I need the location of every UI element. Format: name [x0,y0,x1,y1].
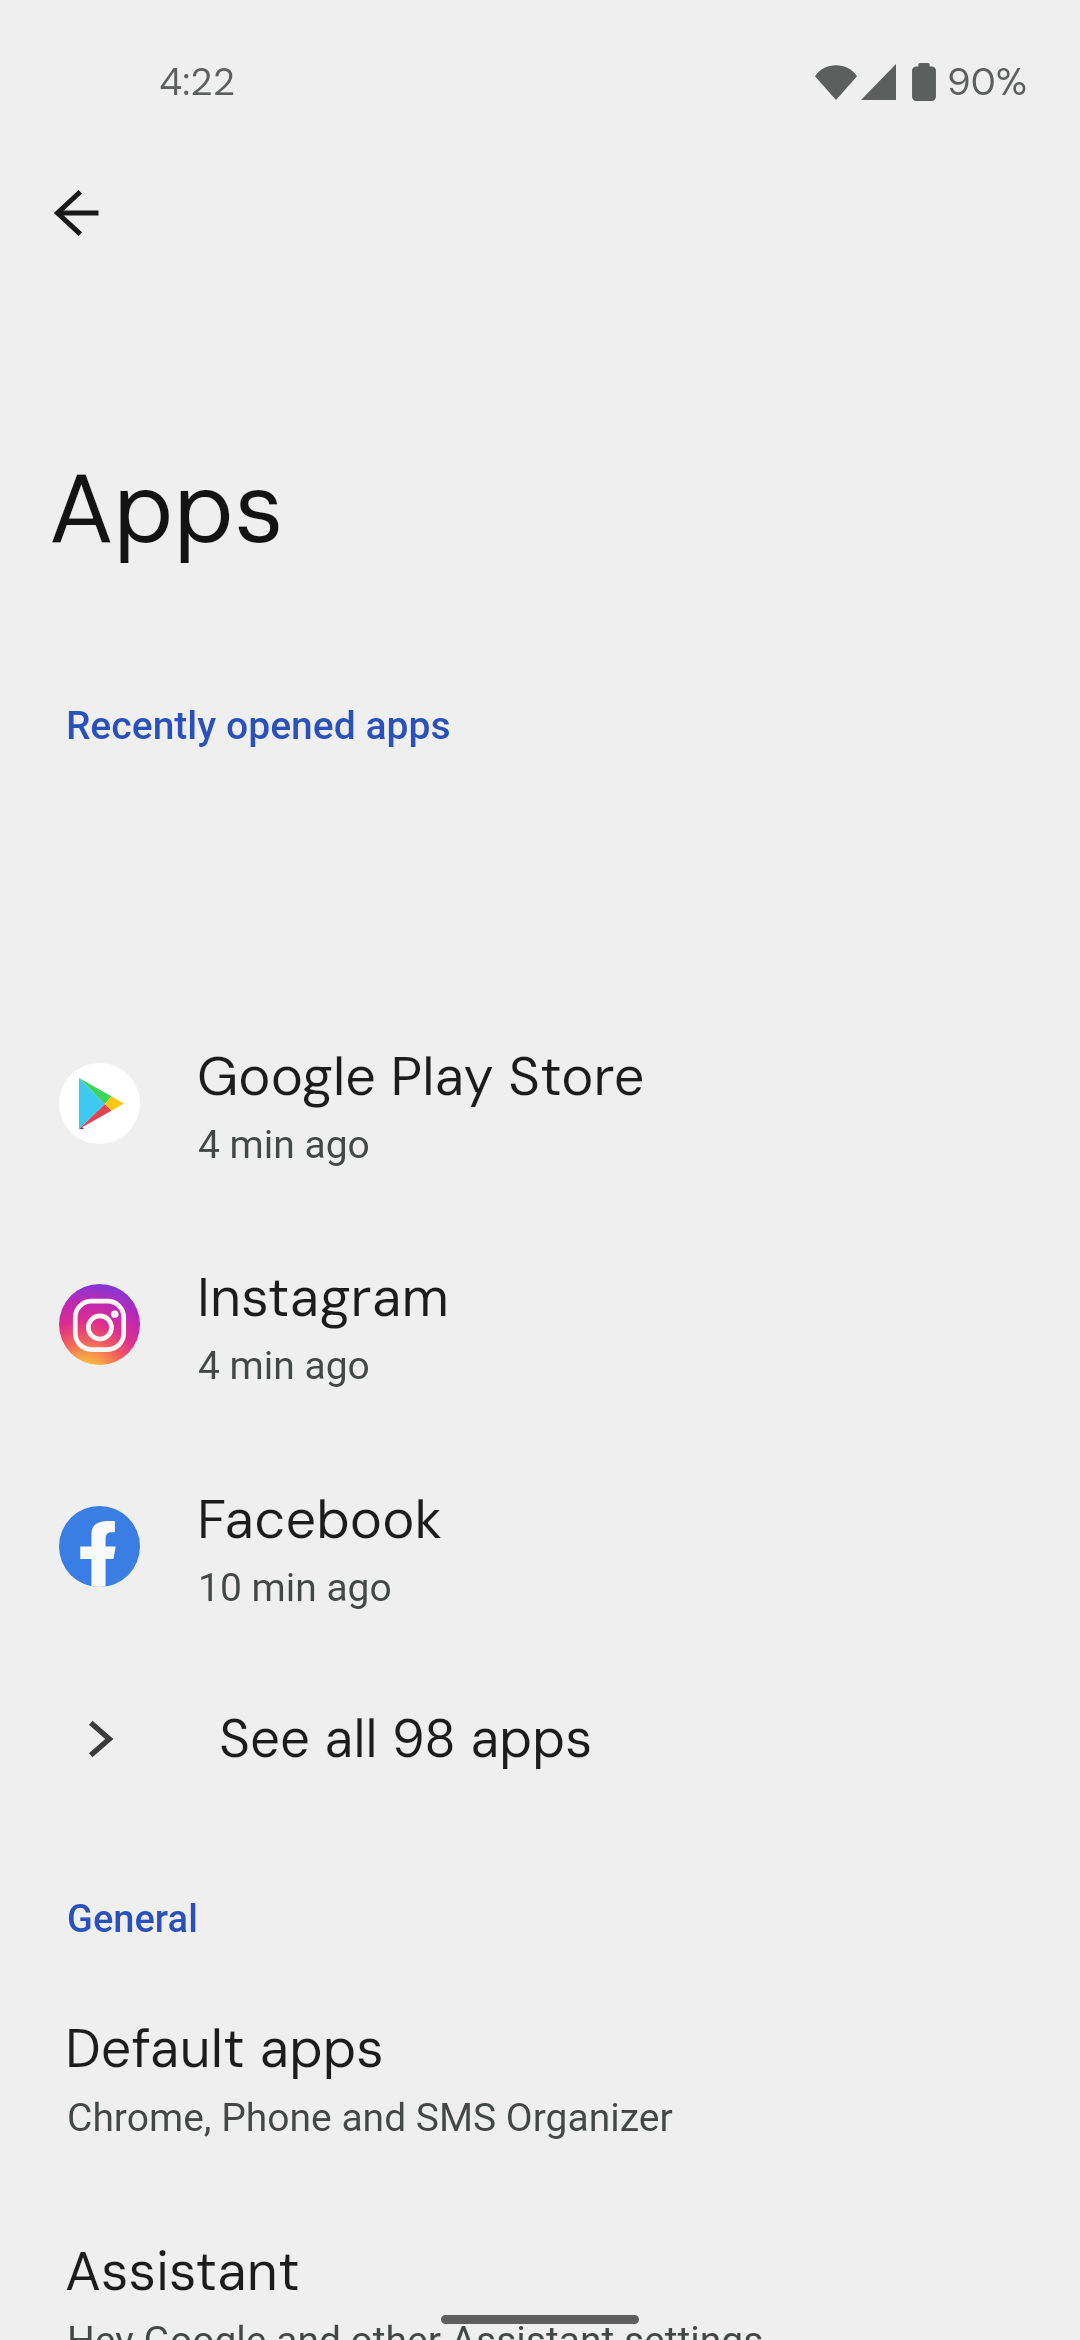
staticText: Instagram [197,1262,450,1333]
staticText: See all 98 apps [219,1704,593,1773]
staticText: General [67,1897,198,1942]
button[interactable]: Google Play Store [0,993,1080,1213]
staticText: Facebook [197,1484,442,1555]
button[interactable]: See all 98 apps [0,1665,1080,1815]
staticText: Apps [49,446,284,572]
button[interactable]: Assistant [0,2228,1080,2340]
staticText: 4 min ago [198,1343,370,1389]
staticText: Default apps [65,2013,384,2083]
staticText: Assistant [65,2236,301,2306]
staticText: 4:22 [159,57,236,106]
button[interactable]: Instagram [0,1214,1080,1434]
staticText: 10 min ago [198,1565,392,1611]
staticText: Hey Google and other Assistant settings [67,2318,764,2340]
button[interactable]: Facebook [0,1436,1080,1656]
button[interactable]: Back [12,148,142,278]
button[interactable]: Default apps [0,2005,1080,2170]
staticText: Chrome, Phone and SMS Organizer [67,2095,673,2141]
staticText: 4 min ago [198,1122,370,1168]
staticText: Recently opened apps [66,703,451,749]
staticText: 90% [947,57,1027,106]
staticText: Google Play Store [197,1041,645,1112]
